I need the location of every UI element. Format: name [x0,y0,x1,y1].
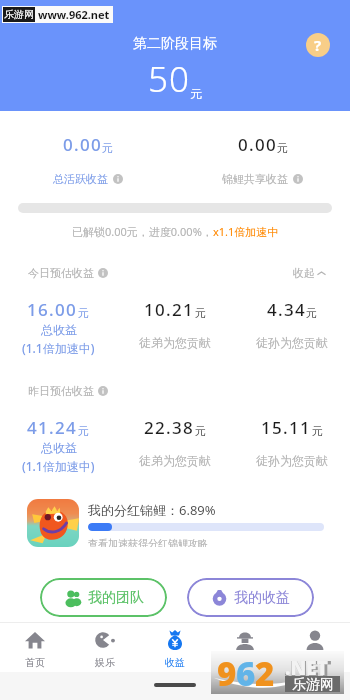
staticText: 徒孙为您贡献 [256,453,328,468]
staticText: 徒孙为您贡献 [256,335,328,350]
button[interactable]: 我的 [280,623,350,672]
staticText: 元 [190,86,202,101]
staticText: ? [314,35,322,55]
staticText: .NET [285,655,328,681]
staticText: 元 [102,141,113,155]
button[interactable]: 收起 [293,266,326,280]
staticText: .NET [284,654,332,683]
staticText: 6 [236,651,255,694]
staticText: 收起 [293,266,315,280]
button[interactable]: 娱乐 [70,623,140,672]
staticText: 收益 [165,656,185,669]
button[interactable]: 我的团队 [40,578,167,617]
staticText: 4.34 [267,298,306,321]
staticText: 我的团队 [88,589,144,607]
staticText: 乐游网 [292,676,334,692]
staticText: www.962.net [38,7,110,22]
staticText: 总收益 [41,322,77,337]
staticText: x1.1倍加速中 [213,224,279,239]
staticText: 元 [306,306,317,320]
staticText: 0.00 [63,133,102,156]
staticText: 元 [78,306,89,320]
staticText: 16.00 [27,298,78,321]
staticText: 查看加速获得分红锦鲤攻略 [88,537,208,547]
staticText: 我的收益 [234,589,290,607]
staticText: (1.1倍加速中) [22,458,95,474]
staticText: 元 [312,424,323,438]
button[interactable]: 收益 [140,623,210,672]
button[interactable]: 首页 [0,623,70,672]
staticText: 0.00 [238,133,277,156]
staticText: 乐游网 [4,8,34,21]
staticText: 锦鲤共享收益 [222,172,288,186]
staticText: 徒弟为您贡献 [139,453,211,468]
staticText: 元 [195,306,206,320]
staticText: 元 [195,424,206,438]
button[interactable]: 我的分红锦鲤：6.89% [27,499,324,547]
button[interactable]: 我的收益 [187,578,314,617]
staticText: 今日预估收益 [28,266,94,280]
button[interactable]: Help [306,33,330,57]
staticText: 2 [255,651,274,694]
staticText: 娱乐 [95,656,115,669]
staticText: (1.1倍加速中) [22,340,95,356]
button[interactable]: 师傅 [210,623,280,672]
staticText: 我的分红锦鲤：6.89% [88,501,216,519]
staticText: 元 [277,141,288,155]
staticText: 总收益 [41,440,77,455]
staticText: 总活跃收益 [53,172,108,186]
staticText: 41.24 [27,416,78,439]
staticText: 徒弟为您贡献 [139,335,211,350]
staticText: 师傅 [235,656,255,669]
staticText: 我的 [305,656,325,669]
staticText: 15.11 [261,416,312,439]
staticText: 元 [78,424,89,438]
staticText: 昨日预估收益 [28,384,94,398]
staticText: 22.38 [144,416,195,439]
staticText: 50 [148,55,190,103]
staticText: 首页 [25,656,45,669]
staticText: 第二阶段目标 [133,35,217,53]
staticText: 10.21 [144,298,195,321]
staticText: 已解锁0.00元，进度0.00%， [72,224,213,239]
staticText: 9 [217,651,236,694]
